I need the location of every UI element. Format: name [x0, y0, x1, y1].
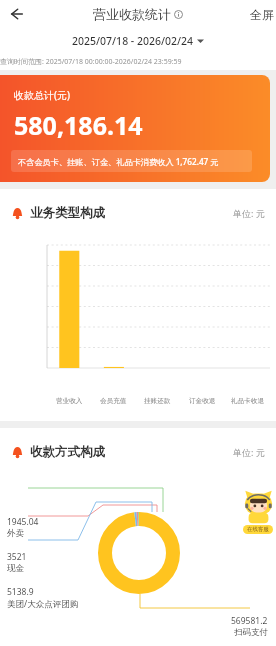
button[interactable]: 营业收款统计 — [93, 6, 183, 22]
staticText: 美团/大众点评团购 — [7, 598, 79, 610]
staticText: 营业收入 — [56, 397, 83, 405]
staticText: 营业收款统计 — [93, 6, 171, 22]
staticText: 2025/07/18 - 2026/02/24 — [72, 34, 194, 48]
staticText: 订金收退 — [189, 397, 216, 405]
staticText: 在线客服 — [247, 526, 269, 533]
staticText: 会员充值 — [100, 397, 127, 405]
button[interactable]: 2025/07/18 - 2026/02/24 — [72, 34, 204, 48]
staticText: 挂账还款 — [144, 397, 171, 405]
staticText: 礼品卡收退 — [231, 397, 264, 405]
staticText: 外卖 — [7, 528, 24, 539]
staticText: 569581.2 — [231, 615, 268, 627]
button[interactable]: 在线客服 — [240, 490, 276, 534]
staticText: 1945.04 — [7, 516, 39, 528]
staticText: 单位: 元 — [233, 207, 265, 219]
staticText: 收款方式构成 — [30, 444, 105, 460]
staticText: 扫码支付 — [234, 627, 268, 638]
staticText: 收款总计(元) — [14, 88, 70, 102]
staticText: 不含会员卡、挂账、订金、礼品卡消费收入 1,762.47 元 — [18, 156, 219, 167]
staticText: 全屏 — [250, 7, 274, 22]
button[interactable]: Back — [4, 2, 28, 26]
staticText: 业务类型构成 — [30, 205, 105, 221]
staticText: 580,186.14 — [14, 108, 143, 142]
staticText: 5138.9 — [7, 586, 34, 598]
staticText: 现金 — [7, 563, 24, 574]
staticText: 单位: 元 — [233, 446, 265, 458]
staticText: 3521 — [7, 551, 27, 563]
staticText: 查询时间范围: 2025/07/18 00:00:00-2026/02/24 2… — [0, 57, 182, 67]
button[interactable]: 全屏 — [250, 7, 274, 22]
